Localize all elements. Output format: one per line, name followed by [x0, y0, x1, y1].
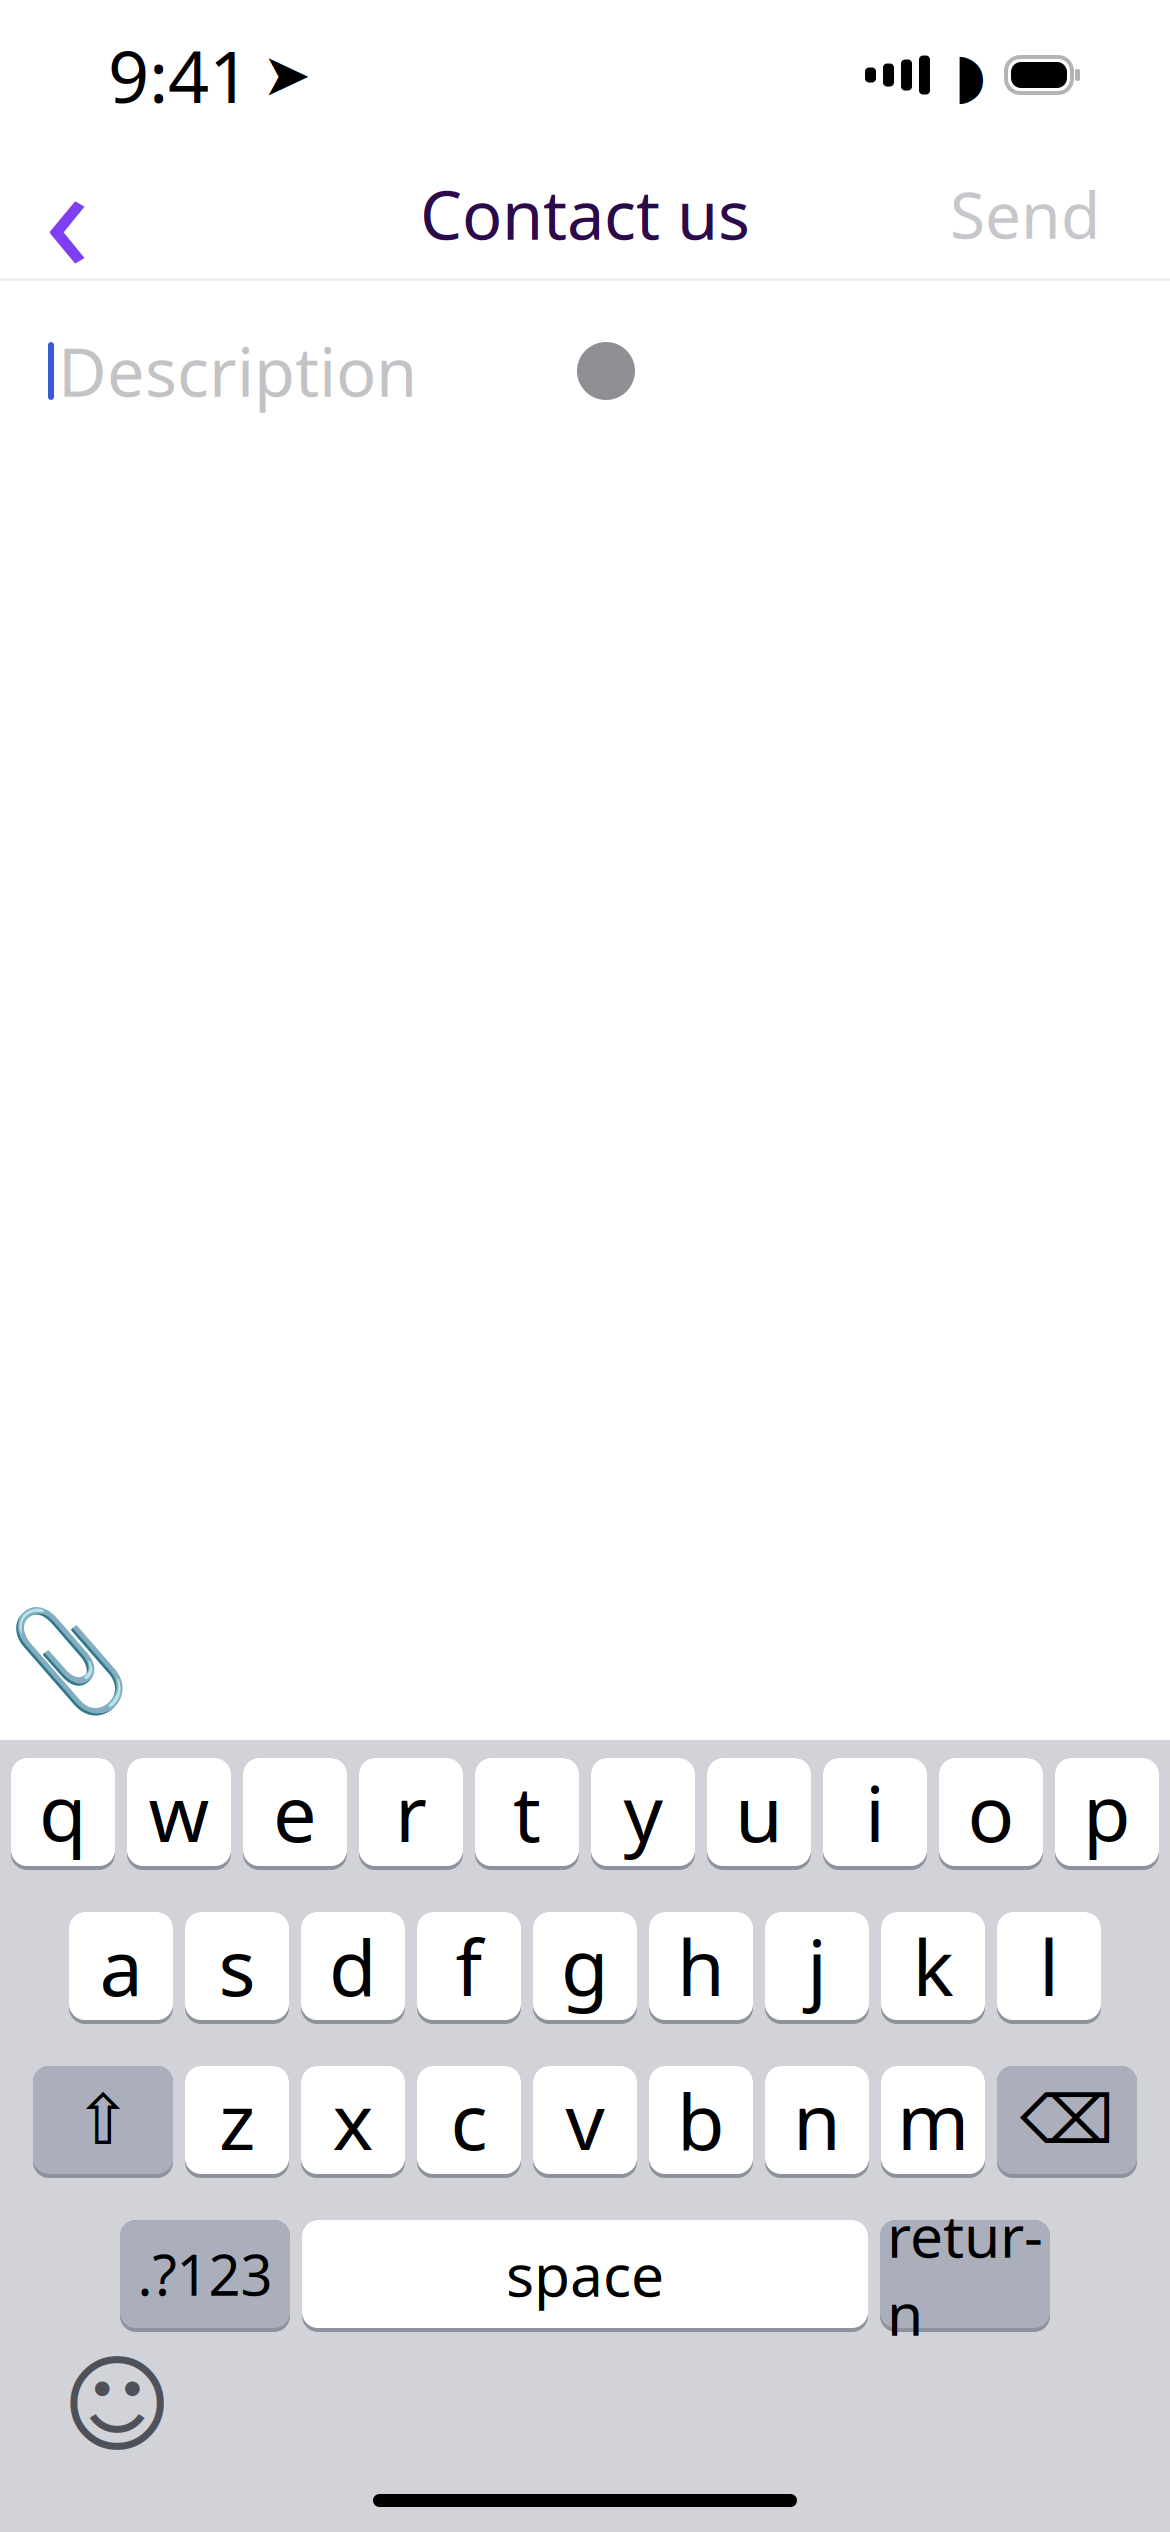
staticText: ‹: [44, 115, 90, 313]
staticText: i: [865, 1761, 885, 1863]
button[interactable]: b: [649, 2066, 753, 2178]
staticText: a: [99, 1915, 142, 2017]
staticText: j: [807, 1915, 827, 2017]
button[interactable]: Send: [938, 150, 1112, 278]
button[interactable]: a: [69, 1912, 173, 2024]
button[interactable]: Attach file: [14, 1606, 124, 1716]
button[interactable]: g: [533, 1912, 637, 2024]
staticText: r: [395, 1761, 427, 1863]
staticText: ⇧: [74, 2081, 132, 2159]
button[interactable]: e: [243, 1758, 347, 1870]
button[interactable]: Shift: [33, 2066, 173, 2178]
staticText: 9:41: [108, 27, 250, 123]
staticText: n: [793, 2069, 841, 2171]
button[interactable]: q: [11, 1758, 115, 1870]
staticText: o: [967, 1761, 1014, 1863]
staticText: m: [897, 2069, 969, 2171]
staticText: .?123: [137, 2237, 272, 2311]
staticText: x: [332, 2069, 373, 2171]
staticText: Contact us: [420, 170, 750, 258]
staticText: w: [148, 1761, 209, 1863]
button[interactable]: Delete: [997, 2066, 1137, 2178]
staticText: Description: [58, 327, 417, 415]
staticText: ☺: [61, 2344, 172, 2466]
staticText: space: [506, 2235, 664, 2313]
staticText: d: [329, 1915, 377, 2017]
staticText: u: [735, 1761, 783, 1863]
button[interactable]: Back: [12, 150, 122, 278]
button[interactable]: Numbers: [120, 2220, 290, 2332]
staticText: l: [1039, 1915, 1059, 2017]
button[interactable]: t: [475, 1758, 579, 1870]
button[interactable]: Space: [302, 2220, 868, 2332]
staticText: ➤: [262, 42, 311, 108]
staticText: ⌫: [1020, 2082, 1114, 2158]
button[interactable]: x: [301, 2066, 405, 2178]
staticText: Send: [950, 171, 1100, 256]
button[interactable]: Emoji: [62, 2350, 172, 2460]
staticText: c: [450, 2069, 487, 2171]
button[interactable]: u: [707, 1758, 811, 1870]
button[interactable]: n: [765, 2066, 869, 2178]
button[interactable]: v: [533, 2066, 637, 2178]
staticText: y: [623, 1761, 662, 1863]
button[interactable]: z: [185, 2066, 289, 2178]
button[interactable]: p: [1055, 1758, 1159, 1870]
staticText: e: [273, 1761, 317, 1863]
staticText: h: [677, 1915, 725, 2017]
staticText: v: [565, 2069, 604, 2171]
staticText: return: [887, 2196, 1043, 2352]
staticText: k: [912, 1915, 953, 2017]
button[interactable]: m: [881, 2066, 985, 2178]
staticText: t: [513, 1761, 541, 1863]
staticText: p: [1083, 1761, 1131, 1863]
staticText: z: [219, 2069, 255, 2171]
staticText: ◗: [954, 40, 986, 110]
button[interactable]: w: [127, 1758, 231, 1870]
staticText: s: [218, 1915, 255, 2017]
button[interactable]: y: [591, 1758, 695, 1870]
staticText: g: [561, 1915, 609, 2017]
staticText: f: [455, 1915, 482, 2017]
button[interactable]: l: [997, 1912, 1101, 2024]
button[interactable]: o: [939, 1758, 1043, 1870]
button[interactable]: k: [881, 1912, 985, 2024]
button[interactable]: d: [301, 1912, 405, 2024]
button[interactable]: Return: [880, 2220, 1050, 2332]
button[interactable]: f: [417, 1912, 521, 2024]
button[interactable]: h: [649, 1912, 753, 2024]
staticText: b: [677, 2069, 725, 2171]
staticText: 📎: [7, 1605, 130, 1717]
button[interactable]: j: [765, 1912, 869, 2024]
staticText: q: [39, 1761, 87, 1863]
button[interactable]: r: [359, 1758, 463, 1870]
button[interactable]: c: [417, 2066, 521, 2178]
button[interactable]: s: [185, 1912, 289, 2024]
button[interactable]: i: [823, 1758, 927, 1870]
